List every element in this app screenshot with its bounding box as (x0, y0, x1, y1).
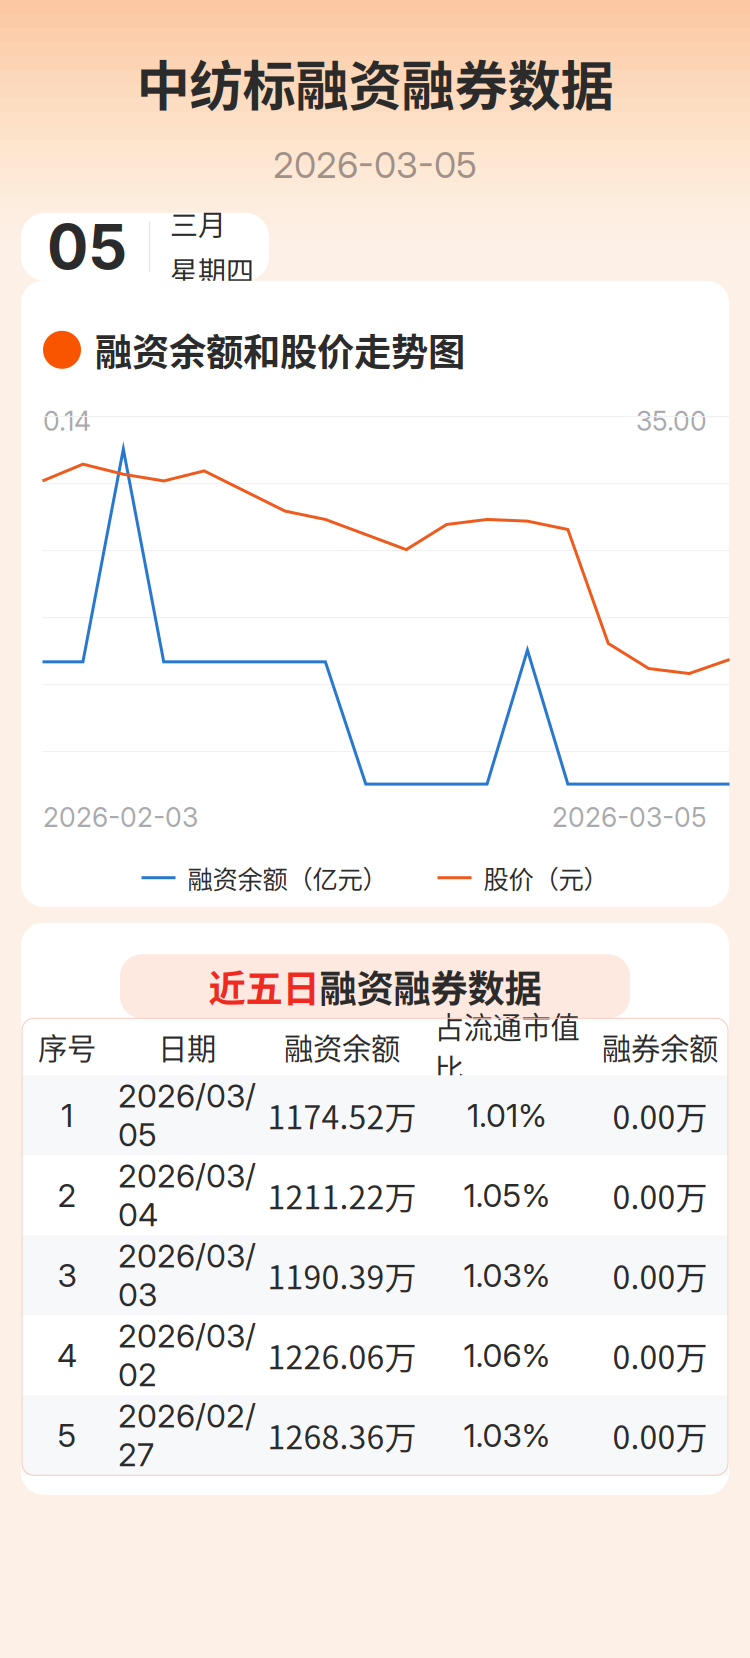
staticText: 1226.06万 (267, 1332, 416, 1378)
staticText: 0.00万 (612, 1092, 707, 1138)
staticText: 35.00 (636, 405, 707, 437)
staticText: 日期 (158, 1025, 216, 1068)
staticText: 1.06% (463, 1336, 550, 1375)
staticText: 股价（元） (483, 859, 608, 896)
staticText: 近五日 (208, 959, 319, 1013)
staticText: 05 (47, 210, 127, 284)
staticText: 占流通市值比 (434, 1004, 579, 1089)
staticText: 1.03% (463, 1416, 550, 1455)
staticText: 1268.36万 (267, 1412, 416, 1458)
staticText: 1211.22万 (267, 1172, 416, 1218)
staticText: 0.00万 (612, 1332, 707, 1378)
staticText: 2026/03/04 (118, 1157, 256, 1234)
staticText: 中纺标融资融券数据 (136, 44, 613, 121)
staticText: 三月 (170, 203, 226, 244)
staticText: 2026-03-05 (273, 143, 477, 187)
staticText: 0.00万 (612, 1252, 707, 1298)
staticText: 1190.39万 (267, 1252, 416, 1298)
staticText: 融资余额（亿元） (187, 859, 387, 896)
staticText: 3 (57, 1256, 76, 1295)
staticText: 5 (57, 1416, 76, 1455)
staticText: 0.00万 (612, 1412, 707, 1458)
staticText: 融资余额 (284, 1025, 400, 1068)
staticText: 融资融券数据 (319, 959, 541, 1013)
staticText: 2026/02/27 (118, 1397, 256, 1474)
staticText: 2026-02-03 (43, 801, 198, 833)
staticText: 0.00万 (612, 1172, 707, 1218)
staticText: 1.01% (467, 1096, 547, 1135)
staticText: 2 (57, 1176, 76, 1215)
staticText: 2026/03/05 (118, 1077, 256, 1154)
staticText: 1 (61, 1096, 73, 1135)
staticText: 融券余额 (602, 1025, 718, 1068)
staticText: 0.14 (43, 405, 91, 437)
staticText: 1.03% (463, 1256, 550, 1295)
staticText: 4 (57, 1336, 77, 1375)
staticText: 1174.52万 (267, 1092, 416, 1138)
staticText: 2026-03-05 (552, 801, 707, 833)
staticText: 2026/03/02 (118, 1317, 256, 1394)
staticText: 序号 (38, 1025, 96, 1068)
staticText: 星期四 (170, 250, 254, 290)
staticText: 融资余额和股价走势图 (95, 323, 465, 377)
staticText: 2026/03/03 (118, 1237, 256, 1314)
staticText: 1.05% (463, 1176, 550, 1215)
